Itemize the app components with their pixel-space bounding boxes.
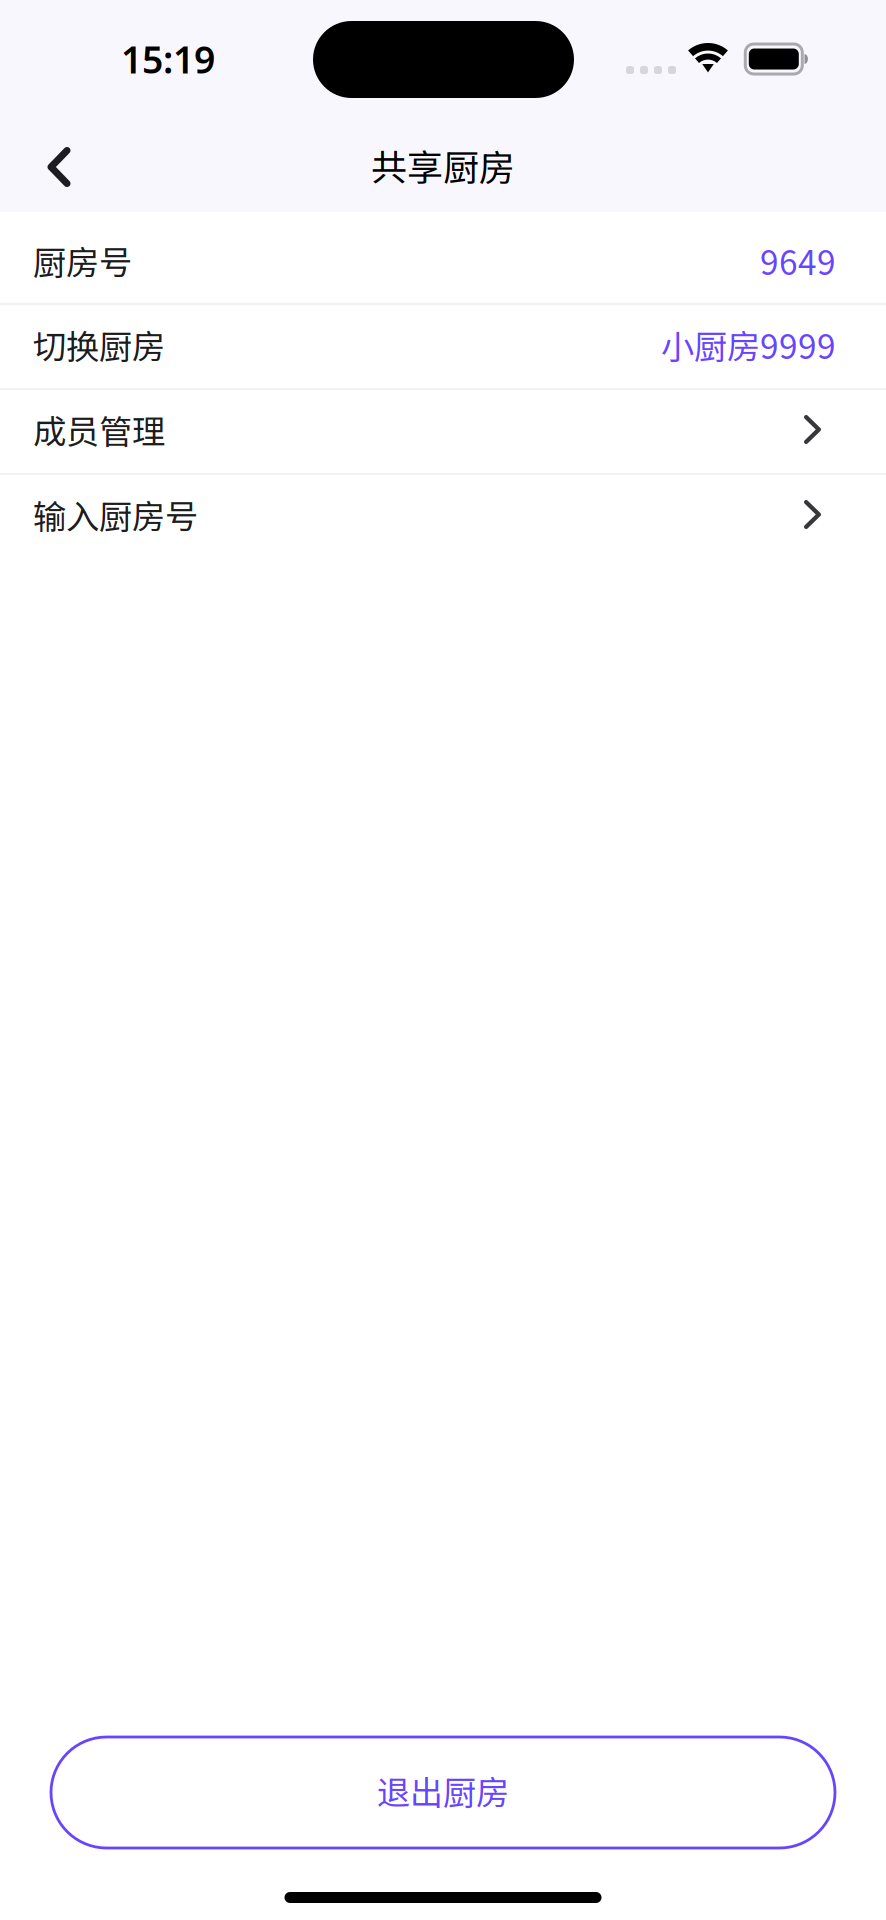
button[interactable]: 厨房号 xyxy=(0,212,886,303)
staticText: 输入厨房号 xyxy=(33,490,198,539)
staticText: 退出厨房 xyxy=(377,1766,509,1815)
staticText: 厨房号 xyxy=(33,236,132,285)
button[interactable]: Back xyxy=(15,125,103,209)
staticText: 切换厨房 xyxy=(33,320,165,369)
staticText: 9649 xyxy=(760,236,836,285)
button[interactable]: 输入厨房号 xyxy=(0,475,886,558)
staticText: 成员管理 xyxy=(33,405,165,454)
staticText: 15:19 xyxy=(121,34,215,84)
button[interactable]: 成员管理 xyxy=(0,390,886,473)
button[interactable]: 切换厨房 xyxy=(0,305,886,388)
staticText: 共享厨房 xyxy=(371,139,515,191)
button[interactable]: 退出厨房 xyxy=(51,1737,835,1848)
staticText: 小厨房9999 xyxy=(661,320,836,369)
